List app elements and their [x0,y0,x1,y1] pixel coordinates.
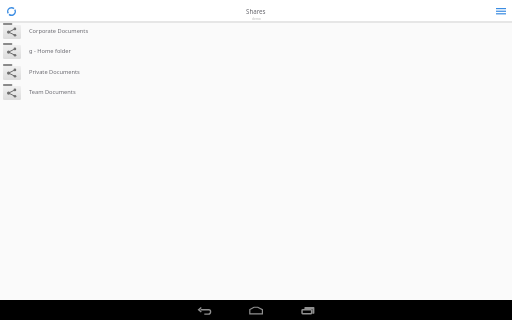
staticText: Shares [246,7,266,15]
button[interactable]: Recent apps [297,300,319,320]
button[interactable]: Corporate Documents [0,21,512,41]
button[interactable]: Menu [494,4,507,17]
button[interactable]: Back [194,300,216,320]
button[interactable]: Home [245,300,267,320]
staticText: Private Documents [29,68,80,76]
button[interactable]: g - Home folder [0,41,512,61]
staticText: Corporate Documents [29,27,89,35]
button[interactable]: Refresh [4,4,19,19]
staticText: Team Documents [29,88,76,96]
button[interactable]: Team Documents [0,82,512,102]
staticText: g - Home folder [29,47,71,55]
staticText: demo [252,17,261,21]
button[interactable]: Private Documents [0,62,512,82]
